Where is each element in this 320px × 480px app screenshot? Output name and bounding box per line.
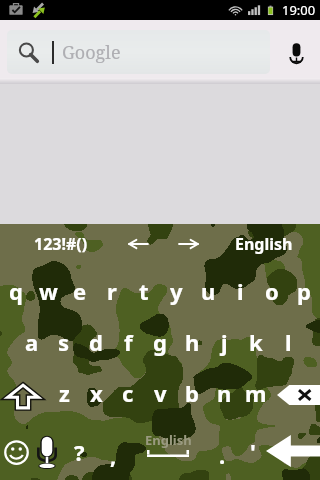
staticText: . (219, 440, 226, 470)
staticText: b (185, 378, 199, 408)
staticText: v (154, 378, 167, 408)
button[interactable]: 123!#() (24, 230, 98, 258)
button[interactable]: w (32, 267, 64, 315)
staticText: q (9, 276, 23, 306)
button[interactable]: Next (172, 230, 204, 258)
button[interactable]: c (112, 369, 144, 417)
button[interactable]: ? (64, 426, 95, 478)
staticText: k (249, 327, 263, 357)
button[interactable]: j (208, 318, 240, 366)
staticText: i (237, 276, 244, 306)
button[interactable]: n (208, 369, 240, 417)
staticText: , (110, 440, 117, 470)
staticText: s (58, 327, 70, 357)
button[interactable]: s (48, 318, 80, 366)
button[interactable]: f (112, 318, 144, 366)
staticText: t (139, 276, 149, 306)
button[interactable]: m (240, 369, 272, 417)
button[interactable]: p (288, 267, 320, 315)
button[interactable]: t (128, 267, 160, 315)
button[interactable]: h (176, 318, 208, 366)
staticText: a (25, 327, 39, 357)
staticText: f (124, 327, 133, 357)
staticText: ' (250, 436, 256, 466)
button[interactable]: Voice input (31, 426, 63, 478)
staticText: d (89, 327, 103, 357)
staticText: y (170, 276, 183, 306)
button[interactable]: k (240, 318, 272, 366)
button[interactable]: i (224, 267, 256, 315)
button[interactable]: English (127, 426, 209, 478)
button[interactable]: , (98, 429, 129, 480)
staticText: l (285, 327, 292, 357)
staticText: o (265, 276, 279, 306)
staticText: z (59, 378, 70, 408)
staticText: h (185, 327, 200, 357)
button[interactable]: q (0, 267, 32, 315)
staticText: 123!#() (34, 233, 88, 255)
staticText: w (39, 276, 58, 306)
staticText: u (201, 276, 216, 306)
button[interactable]: g (144, 318, 176, 366)
staticText: m (245, 378, 267, 408)
button[interactable]: u (192, 267, 224, 315)
staticText: ? (74, 437, 85, 467)
button[interactable]: x (80, 369, 112, 417)
button[interactable]: d (80, 318, 112, 366)
staticText: n (217, 378, 232, 408)
button[interactable]: v (144, 369, 176, 417)
button[interactable]: Previous (122, 230, 154, 258)
button[interactable]: Shift (0, 372, 48, 420)
button[interactable]: o (256, 267, 288, 315)
staticText: c (122, 378, 134, 408)
button[interactable]: a (16, 318, 48, 366)
button[interactable]: l (272, 318, 304, 366)
staticText: p (297, 276, 311, 306)
staticText: Google (62, 40, 121, 65)
staticText: 19:00 (282, 1, 316, 19)
staticText: English (145, 431, 192, 449)
button[interactable]: e (64, 267, 96, 315)
button[interactable]: Google (7, 30, 270, 74)
staticText: English (235, 233, 293, 255)
button[interactable]: b (176, 369, 208, 417)
button[interactable]: English (228, 230, 300, 258)
button[interactable]: Voice search (273, 30, 319, 74)
button[interactable]: r (96, 267, 128, 315)
button[interactable]: Enter (266, 425, 320, 477)
button[interactable]: ' (238, 425, 268, 477)
button[interactable]: y (160, 267, 192, 315)
button[interactable]: . (207, 429, 237, 480)
button[interactable]: Backspace (272, 372, 320, 420)
staticText: e (73, 276, 87, 306)
staticText: j (221, 327, 228, 357)
button[interactable]: z (48, 369, 80, 417)
button[interactable]: Emoji (0, 426, 32, 478)
staticText: x (90, 378, 103, 408)
staticText: g (153, 327, 167, 357)
staticText: r (107, 276, 117, 306)
